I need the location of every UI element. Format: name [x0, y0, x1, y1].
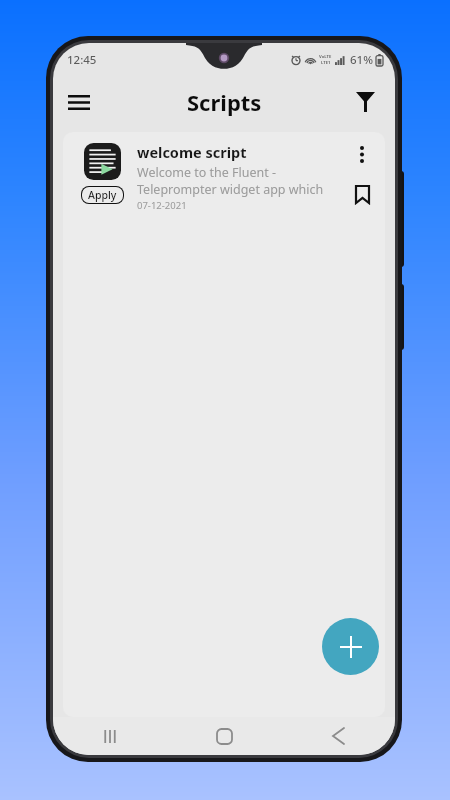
staticText: welcome script: [137, 142, 247, 162]
button[interactable]: Bookmark: [349, 181, 375, 207]
staticText: VoLTE: [319, 54, 332, 60]
button[interactable]: Back: [281, 717, 395, 755]
button[interactable]: Menu: [59, 82, 99, 122]
button[interactable]: Filter: [345, 82, 385, 122]
button[interactable]: Home: [167, 717, 281, 755]
staticText: 07-12-2021: [137, 199, 187, 212]
staticText: Welcome to the Fluent - Teleprompter wid…: [137, 164, 324, 197]
staticText: 61%: [350, 52, 373, 68]
staticText: Scripts: [187, 87, 262, 117]
button[interactable]: Recents: [53, 717, 167, 755]
button[interactable]: Apply: [63, 132, 385, 717]
staticText: LTE1: [321, 60, 331, 66]
button[interactable]: Add script: [322, 618, 379, 675]
button[interactable]: More options: [349, 141, 375, 167]
staticText: 12:45: [67, 52, 97, 68]
staticText: Apply: [88, 188, 117, 202]
